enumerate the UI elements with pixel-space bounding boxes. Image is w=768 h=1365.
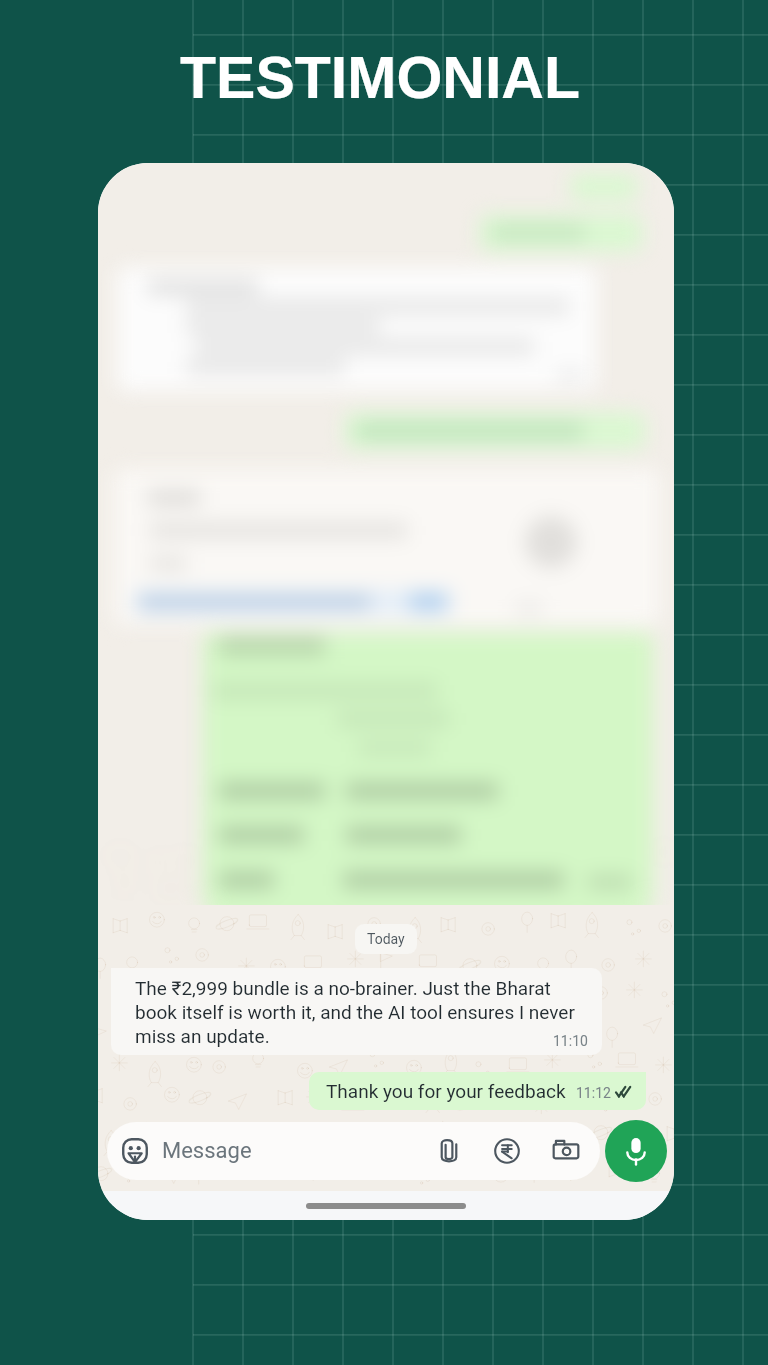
button[interactable]: Voice message — [605, 1120, 667, 1182]
button[interactable]: Today — [355, 924, 417, 954]
button[interactable]: Emoji and stickers — [107, 1122, 600, 1180]
other: Payment — [494, 1138, 520, 1164]
button[interactable]: The ₹2,999 bundle is a no-brainer. Just … — [111, 968, 602, 1055]
other: Camera — [552, 1137, 580, 1165]
staticText: Thank you for your feedback — [326, 1080, 566, 1102]
staticText: Today — [367, 931, 405, 947]
staticText: 11:10 — [553, 1033, 588, 1049]
staticText: The ₹2,999 bundle is a no-brainer. Just … — [135, 977, 588, 1047]
staticText: TESTIMONIAL — [0, 45, 764, 111]
button[interactable]: Thank you for your feedback — [309, 1072, 646, 1110]
other: Emoji and stickers — [121, 1137, 149, 1165]
staticText: 11:12 — [576, 1085, 611, 1101]
staticText: Message — [162, 1138, 252, 1164]
other: Attach — [436, 1138, 462, 1164]
